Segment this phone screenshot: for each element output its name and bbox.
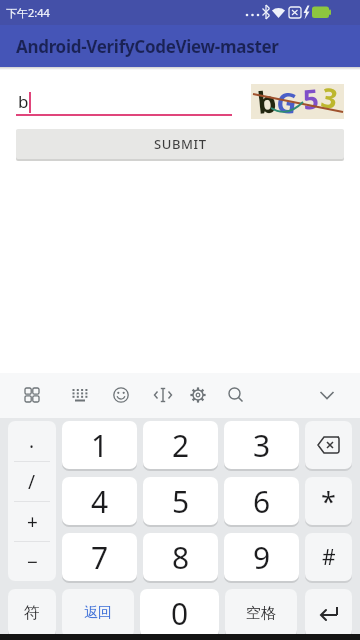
button[interactable] — [305, 421, 352, 469]
button[interactable]: 5 — [143, 477, 218, 525]
staticText: 3 — [253, 425, 271, 466]
staticText: 4 — [91, 481, 109, 522]
button[interactable] — [0, 373, 52, 418]
button[interactable]: 6 — [224, 477, 299, 525]
staticText: SUBMIT — [154, 135, 207, 153]
staticText: 0 — [171, 593, 189, 634]
button[interactable] — [104, 373, 156, 418]
button[interactable]: − — [8, 542, 56, 581]
button[interactable]: / — [8, 462, 56, 501]
button[interactable]: SUBMIT — [16, 129, 344, 159]
staticText: 5 — [172, 481, 190, 522]
staticText: 空格 — [246, 604, 276, 623]
staticText: 符 — [24, 603, 40, 623]
button[interactable] — [207, 373, 258, 418]
staticText: / — [28, 469, 36, 495]
button[interactable]: 0 — [140, 589, 219, 637]
staticText: . — [29, 428, 35, 454]
button[interactable]: # — [305, 533, 352, 581]
button[interactable] — [16, 84, 232, 116]
staticText: 8 — [172, 537, 190, 578]
button[interactable]: 1 — [62, 421, 137, 469]
staticText: G — [275, 82, 300, 119]
button[interactable]: 7 — [62, 533, 137, 581]
staticText: 返回 — [84, 604, 112, 622]
button[interactable]: + — [8, 502, 56, 541]
button[interactable] — [156, 373, 207, 418]
button[interactable]: 空格 — [225, 589, 297, 637]
button[interactable] — [305, 589, 352, 637]
staticText: 3 — [319, 78, 341, 115]
button[interactable]: 3 — [224, 421, 299, 469]
button[interactable] — [309, 373, 360, 418]
button[interactable] — [52, 373, 104, 418]
button[interactable]: 4 — [62, 477, 137, 525]
button[interactable]: 符 — [8, 589, 56, 637]
staticText: Android-VerifyCodeView-master — [16, 35, 279, 58]
staticText: 2 — [172, 425, 190, 466]
button[interactable]: 2 — [143, 421, 218, 469]
staticText: 5 — [301, 79, 320, 116]
staticText: b — [18, 90, 29, 113]
button[interactable]: 返回 — [62, 589, 134, 637]
button[interactable]: 8 — [143, 533, 218, 581]
button[interactable]: b — [251, 84, 344, 119]
staticText: − — [27, 549, 38, 575]
button[interactable]: * — [305, 477, 352, 525]
staticText: 9 — [253, 537, 271, 578]
staticText: * — [321, 483, 336, 520]
staticText: 7 — [91, 537, 109, 578]
button[interactable]: . — [8, 421, 56, 461]
button[interactable]: . — [8, 421, 56, 581]
button[interactable]: 9 — [224, 533, 299, 581]
staticText: + — [27, 509, 38, 535]
staticText: 1 — [91, 425, 109, 466]
staticText: # — [322, 543, 336, 572]
staticText: b — [255, 80, 278, 117]
staticText: 下午2:44 — [6, 5, 50, 20]
staticText: 6 — [253, 481, 271, 522]
